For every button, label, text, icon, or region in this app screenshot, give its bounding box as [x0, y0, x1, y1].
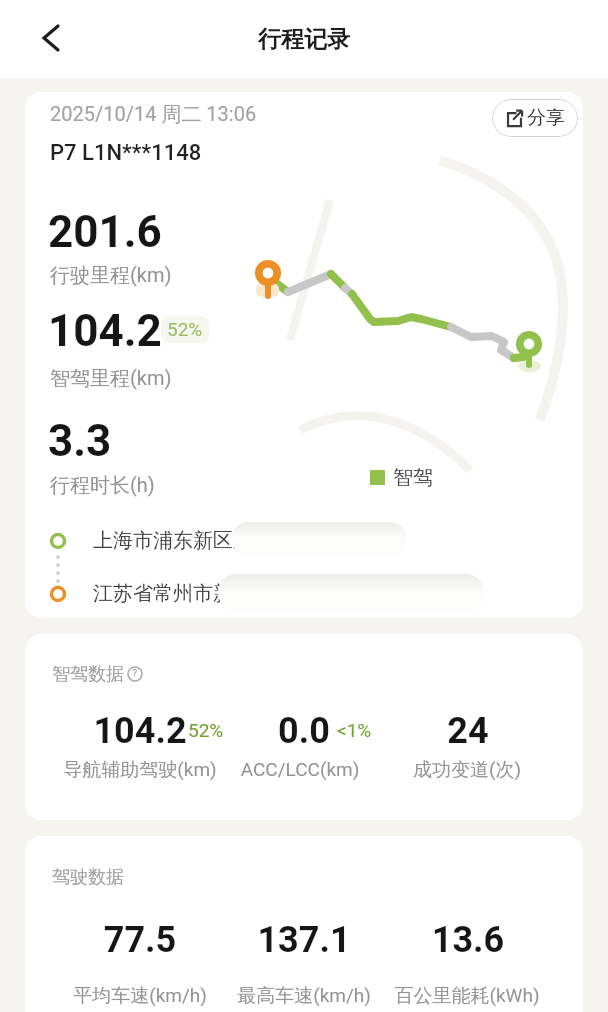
staticText: 0.0 — [214, 710, 394, 752]
staticText: 行程记录 — [258, 25, 350, 54]
staticText: 智驾数据 — [52, 663, 124, 686]
staticText: 77.5 — [50, 919, 230, 961]
staticText: 驾驶数据 — [52, 866, 124, 889]
staticText: 行驶里程(km) — [50, 263, 172, 288]
staticText: 24 — [378, 710, 558, 752]
staticText: 上海市浦东新区庄 — [93, 528, 253, 553]
staticText: 13.6 — [378, 919, 558, 961]
staticText: 智驾里程(km) — [50, 366, 172, 391]
staticText: 智驾 — [393, 465, 433, 490]
staticText: 最高车速(km/h) — [194, 984, 414, 1008]
staticText: <1% — [337, 719, 372, 741]
staticText: 3.3 — [48, 415, 112, 467]
staticText: 分享 — [527, 106, 565, 130]
staticText: 导航辅助驾驶(km) — [30, 758, 250, 782]
staticText: 104.2 — [50, 710, 230, 752]
staticText: 平均车速(km/h) — [30, 984, 250, 1008]
staticText: 52% — [188, 719, 224, 741]
staticText: ? — [132, 667, 138, 680]
button[interactable] — [28, 16, 72, 60]
staticText: 成功变道(次) — [357, 758, 577, 782]
staticText: 百公里能耗(kWh) — [357, 984, 577, 1008]
staticText: P7 L1N***1148 — [50, 140, 202, 166]
staticText: ACC/LCC(km) — [190, 758, 410, 780]
staticText: 104.2 — [48, 305, 162, 357]
staticText: 2025/10/14 周二 13:06 — [50, 102, 257, 127]
button[interactable]: 分享 — [492, 99, 578, 137]
staticText: 行程时长(h) — [50, 473, 155, 498]
staticText: 52% — [167, 318, 203, 340]
staticText: 137.1 — [214, 919, 394, 961]
staticText: 江苏省常州市新北区 — [93, 581, 273, 606]
staticText: 201.6 — [48, 206, 162, 258]
